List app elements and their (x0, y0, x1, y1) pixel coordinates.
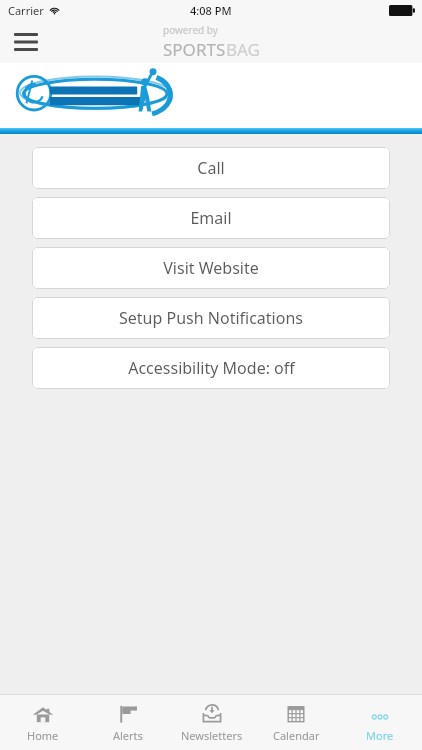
staticText: Home (27, 728, 59, 743)
button[interactable]: Calendar (254, 695, 338, 750)
button[interactable]: Call (32, 147, 390, 189)
button[interactable]: Newsletters (170, 695, 254, 750)
staticText: Carrier (8, 3, 44, 18)
button[interactable]: Setup Push Notifications (32, 297, 390, 339)
button[interactable]: Email (32, 197, 390, 239)
staticText: Alerts (113, 728, 143, 743)
button[interactable]: Visit Website (32, 247, 390, 289)
staticText: Calendar (273, 728, 320, 743)
staticText: Setup Push Notifications (119, 307, 303, 329)
staticText: 4:08 PM (190, 3, 232, 18)
staticText: Accessibility Mode: off (128, 357, 295, 379)
button[interactable]: More (338, 695, 422, 750)
staticText: SPORTS (163, 38, 226, 61)
staticText: Visit Website (163, 257, 259, 279)
button[interactable]: Accessibility Mode: off (32, 347, 390, 389)
staticText: More (366, 728, 394, 743)
staticText: powered by (163, 23, 218, 37)
staticText: Email (190, 207, 232, 229)
button[interactable]: Alerts (85, 695, 170, 750)
button[interactable]: Home (0, 695, 85, 750)
staticText: BAG (226, 38, 260, 61)
staticText: Newsletters (181, 728, 243, 743)
staticText: Call (197, 157, 225, 179)
button[interactable]: Menu (8, 24, 44, 60)
